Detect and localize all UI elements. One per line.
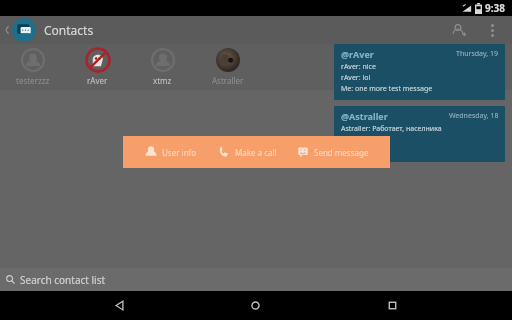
staticText: User info xyxy=(162,147,197,158)
button[interactable]: Recents xyxy=(375,291,409,320)
button[interactable]: xtmz xyxy=(130,44,195,90)
staticText: Me: 123 xyxy=(341,146,368,156)
button[interactable]: @rAver xyxy=(334,44,505,100)
button[interactable]: testerzzz xyxy=(0,44,65,90)
staticText: Me: one more test message xyxy=(341,84,433,94)
staticText: @rAver xyxy=(341,48,374,60)
button[interactable]: More options xyxy=(480,18,504,42)
button[interactable]: Send message xyxy=(285,136,380,168)
staticText: Thursday, 19 xyxy=(456,49,499,59)
button[interactable]: User info xyxy=(133,136,209,168)
staticText: Contacts xyxy=(44,22,94,38)
button[interactable]: Home xyxy=(238,291,272,320)
staticText: Astraller: Работает, населника xyxy=(341,124,442,134)
staticText: @Astraller xyxy=(341,110,388,122)
button[interactable]: @Astraller xyxy=(334,106,505,162)
staticText: Astraller: 312 xyxy=(341,135,385,145)
button[interactable]: Make a call xyxy=(209,136,285,168)
button[interactable]: Add contact xyxy=(446,17,472,43)
staticText: Wednesday, 18 xyxy=(449,111,499,121)
staticText: Send message xyxy=(314,147,369,158)
button[interactable]: rAver xyxy=(65,44,130,90)
staticText: rAver: nice xyxy=(341,62,376,72)
staticText: Search contact list xyxy=(20,273,106,287)
staticText: 9:38 xyxy=(485,1,505,15)
staticText: Make a call xyxy=(235,147,277,158)
staticText: testerzzz xyxy=(16,75,50,86)
button[interactable]: Search contact list xyxy=(0,268,512,291)
button[interactable]: Back xyxy=(102,291,136,320)
staticText: xtmz xyxy=(153,75,172,86)
staticText: rAver: lol xyxy=(341,73,371,83)
staticText: Astraller xyxy=(212,75,244,86)
button[interactable]: Astraller xyxy=(195,44,260,90)
staticText: rAver xyxy=(87,75,108,86)
